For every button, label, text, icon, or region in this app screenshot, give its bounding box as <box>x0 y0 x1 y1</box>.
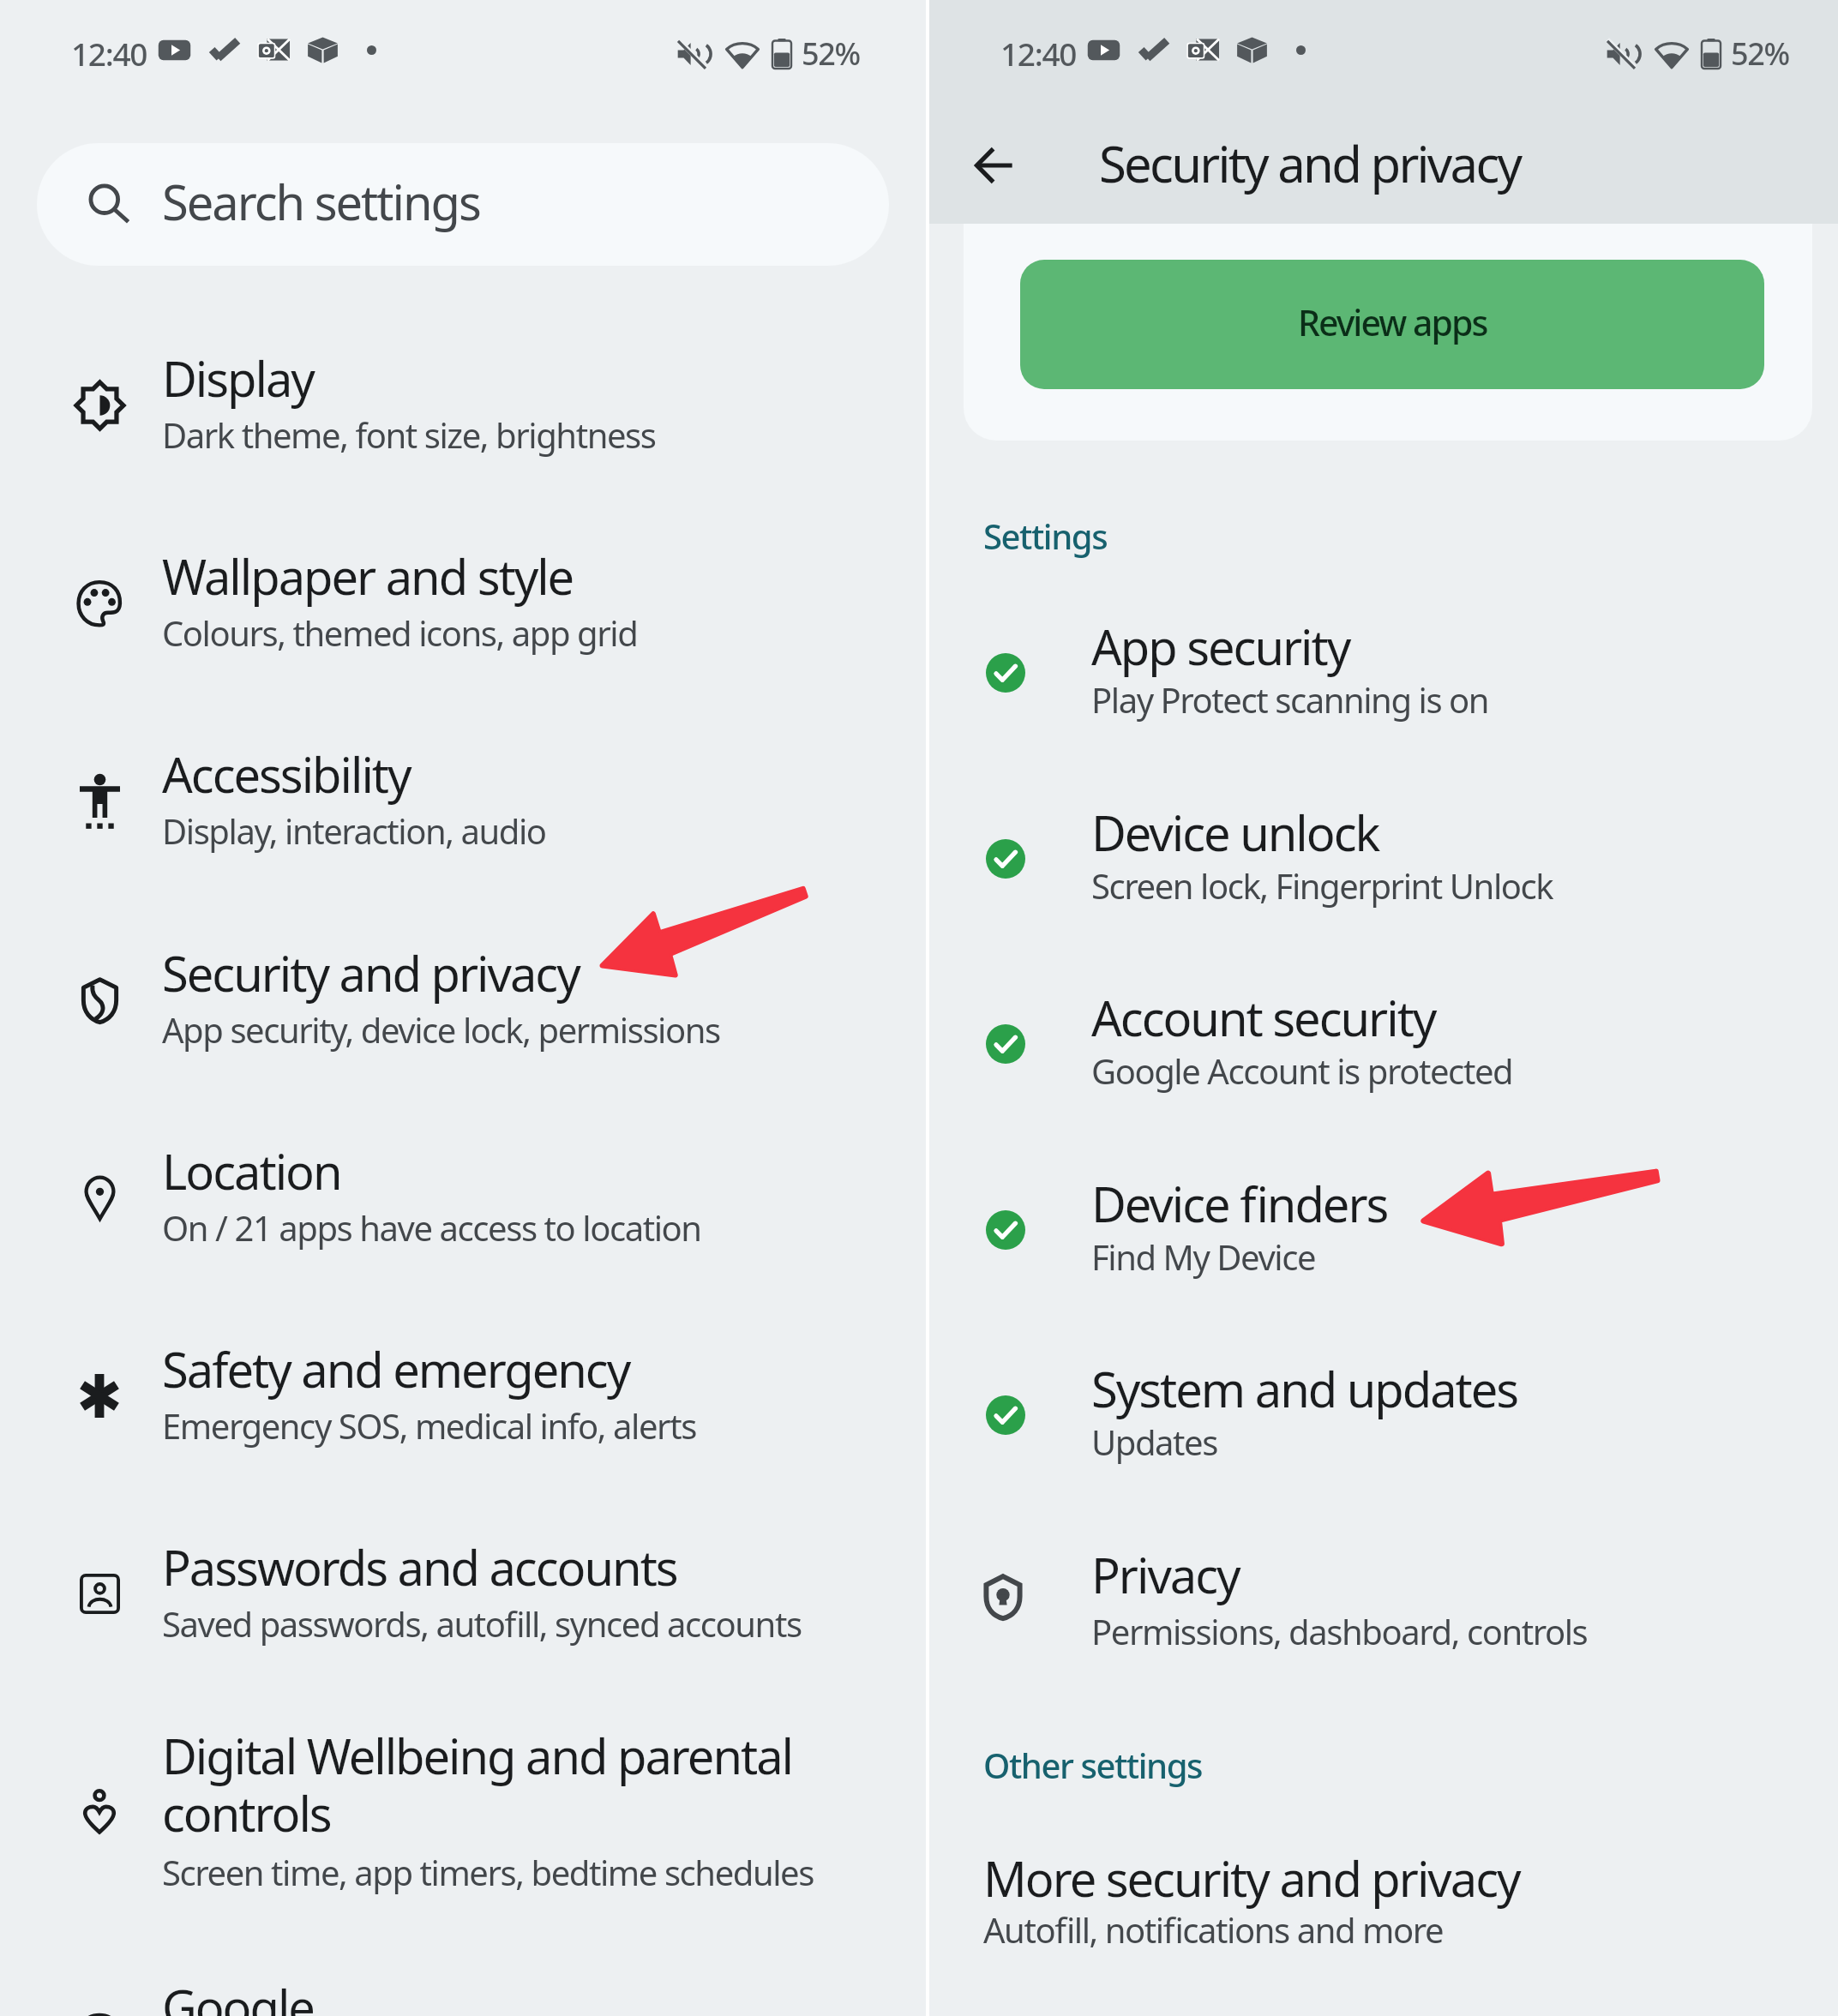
button[interactable]: Security and privacy <box>0 889 926 1043</box>
button[interactable]: Review apps <box>1020 260 1764 389</box>
button[interactable]: Wallpaper and style <box>0 492 926 646</box>
button[interactable]: App security <box>929 562 1838 717</box>
staticText: Search settings <box>162 176 480 232</box>
button[interactable]: Safety and emergency <box>0 1285 926 1439</box>
button[interactable]: Device finders <box>929 1119 1838 1274</box>
button[interactable]: Search settings <box>37 143 889 266</box>
staticText: App security, device lock, permissions <box>162 1011 720 1052</box>
staticText: Passwords and accounts <box>162 1541 677 1598</box>
staticText: Find My Device <box>1091 1239 1316 1279</box>
button[interactable]: System and updates <box>929 1305 1838 1459</box>
staticText: App security <box>1091 621 1350 677</box>
staticText: Google <box>162 1981 314 2016</box>
staticText: Digital Wellbeing and parental <box>162 1730 793 1786</box>
staticText: Device finders <box>1091 1178 1388 1234</box>
staticText: Safety and emergency <box>162 1343 630 1400</box>
staticText: controls <box>162 1787 331 1844</box>
staticText: On / 21 apps have access to location <box>162 1209 701 1250</box>
staticText: Other settings <box>983 1747 1203 1787</box>
staticText: Review apps <box>1298 303 1487 345</box>
button[interactable]: Location <box>0 1087 926 1241</box>
staticText: Saved passwords, autofill, synced accoun… <box>162 1605 802 1646</box>
button[interactable]: Digital Wellbeing and parental <box>0 1680 926 1929</box>
staticText: Accessibility <box>162 748 411 805</box>
button[interactable]: Accessibility <box>0 690 926 844</box>
staticText: Security and privacy <box>162 947 580 1004</box>
button[interactable]: Account security <box>929 933 1838 1088</box>
staticText: 52% <box>802 37 860 73</box>
button[interactable]: Privacy <box>929 1491 1838 1645</box>
staticText: Privacy <box>1091 1549 1240 1605</box>
staticText: Play Protect scanning is on <box>1091 681 1489 722</box>
staticText: Settings <box>983 518 1108 558</box>
staticText: Display <box>162 352 314 409</box>
staticText: Emergency SOS, medical info, alerts <box>162 1407 696 1448</box>
staticText: 12:40 <box>71 37 147 75</box>
staticText: Screen time, app timers, bedtime schedul… <box>162 1854 814 1894</box>
staticText: Autofill, notifications and more <box>983 1911 1444 1952</box>
staticText: Account security <box>1091 992 1436 1048</box>
button[interactable]: Google <box>0 1963 926 2016</box>
staticText: Permissions, dashboard, controls <box>1091 1613 1588 1653</box>
button[interactable]: Passwords and accounts <box>0 1483 926 1637</box>
staticText: Google Account is protected <box>1091 1053 1513 1093</box>
staticText: Security and privacy <box>1099 136 1521 195</box>
staticText: 12:40 <box>1000 37 1077 75</box>
button[interactable]: Device unlock <box>929 748 1838 903</box>
staticText: Wallpaper and style <box>162 550 574 607</box>
staticText: Dark theme, font size, brightness <box>162 417 656 457</box>
staticText: Device unlock <box>1091 807 1379 863</box>
button[interactable]: Display <box>0 294 926 448</box>
staticText: 52% <box>1731 37 1789 73</box>
staticText: Screen lock, Fingerprint Unlock <box>1091 867 1553 908</box>
staticText: Updates <box>1091 1424 1217 1464</box>
staticText: More security and privacy <box>983 1852 1520 1909</box>
staticText: System and updates <box>1091 1363 1518 1419</box>
staticText: Display, interaction, audio <box>162 813 546 853</box>
staticText: Location <box>162 1145 341 1202</box>
button[interactable]: More security and privacy <box>929 1826 1838 1980</box>
button[interactable]: Back <box>941 117 1039 214</box>
staticText: Colours, themed icons, app grid <box>162 615 638 655</box>
